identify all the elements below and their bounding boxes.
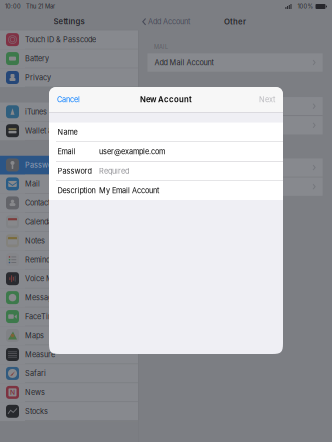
button[interactable]: Default Account bbox=[147, 116, 323, 134]
staticText: N bbox=[10, 388, 15, 396]
staticText: Add CalDAV Account bbox=[154, 182, 224, 191]
staticText: Description bbox=[57, 186, 95, 195]
staticText: Email bbox=[57, 147, 75, 156]
staticText: Add Mail Account bbox=[154, 58, 213, 67]
button[interactable]: Mail bbox=[0, 175, 138, 194]
button[interactable]: Stocks bbox=[0, 402, 138, 421]
staticText: Mail bbox=[25, 179, 40, 188]
staticText: MAIL bbox=[154, 44, 168, 50]
button[interactable]: Email bbox=[49, 142, 283, 161]
staticText: FaceTime bbox=[25, 312, 58, 321]
staticText: 100% bbox=[297, 3, 313, 10]
staticText: Measure bbox=[25, 350, 55, 359]
staticText: user@example.com bbox=[99, 147, 165, 156]
button[interactable]: Add Subscribed Calendar bbox=[147, 158, 323, 177]
staticText: Safari bbox=[25, 369, 46, 378]
button[interactable]: Add CalDAV Account bbox=[147, 177, 323, 196]
staticText: Add Account bbox=[148, 17, 190, 26]
staticText: Notes bbox=[25, 236, 45, 245]
button[interactable]: Password bbox=[49, 161, 283, 180]
button[interactable]: Passwords & Accounts bbox=[0, 156, 138, 175]
button[interactable]: FaceTime bbox=[0, 307, 138, 326]
staticText: 10:00 bbox=[5, 3, 21, 10]
staticText: Battery bbox=[25, 54, 49, 63]
staticText: Next bbox=[259, 95, 275, 104]
staticText: Wallet & Apple Pay bbox=[25, 126, 89, 135]
button[interactable]: Add Mail Account bbox=[147, 53, 323, 72]
button[interactable]: Measure bbox=[0, 345, 138, 364]
staticText: Privacy bbox=[25, 73, 51, 82]
staticText: Password bbox=[57, 167, 91, 175]
button[interactable]: Description bbox=[49, 181, 283, 200]
staticText: Add Contacts Account bbox=[154, 102, 227, 111]
staticText: Settings bbox=[53, 17, 84, 26]
staticText: My Email Account bbox=[99, 186, 159, 195]
button[interactable]: Privacy bbox=[0, 68, 138, 87]
staticText: New Account bbox=[140, 95, 192, 104]
staticText: Cancel bbox=[57, 95, 80, 104]
button[interactable]: Voice Memos bbox=[0, 269, 138, 288]
button[interactable]: Reminders bbox=[0, 250, 138, 269]
button[interactable]: N bbox=[0, 383, 138, 402]
staticText: Stocks bbox=[25, 407, 48, 416]
staticText: Messages bbox=[25, 293, 60, 302]
button[interactable]: Maps bbox=[0, 326, 138, 345]
button[interactable]: Battery bbox=[0, 49, 138, 68]
button[interactable]: Safari bbox=[0, 364, 138, 383]
button[interactable]: Notes bbox=[0, 231, 138, 250]
staticText: Name bbox=[57, 128, 77, 136]
button[interactable]: Contacts bbox=[0, 194, 138, 212]
button[interactable]: Calendar bbox=[0, 213, 138, 231]
button[interactable]: Add Contacts Account bbox=[147, 97, 323, 115]
button[interactable]: Next bbox=[259, 89, 283, 110]
staticText: News bbox=[25, 388, 45, 397]
staticText: Voice Memos bbox=[25, 274, 71, 283]
staticText: Passwords & Accounts bbox=[25, 160, 103, 169]
button[interactable]: Add Account bbox=[138, 13, 190, 30]
button[interactable]: iTunes & App Store bbox=[0, 102, 138, 121]
button[interactable]: Touch ID & Passcode bbox=[0, 30, 138, 49]
staticText: Default Account bbox=[154, 121, 207, 130]
button[interactable]: Name bbox=[49, 122, 283, 141]
staticText: Required bbox=[99, 167, 129, 175]
staticText: Thu 21 Mar bbox=[26, 3, 55, 10]
button[interactable]: Wallet & Apple Pay bbox=[0, 121, 138, 140]
button[interactable]: Messages bbox=[0, 288, 138, 307]
staticText: Maps bbox=[25, 331, 44, 340]
staticText: Calendar bbox=[25, 217, 55, 226]
staticText: CALENDARS bbox=[154, 149, 188, 155]
staticText: Other bbox=[224, 17, 246, 26]
staticText: Contacts bbox=[25, 198, 54, 207]
button[interactable]: Cancel bbox=[49, 89, 80, 110]
staticText: Reminders bbox=[25, 255, 61, 264]
staticText: Touch ID & Passcode bbox=[25, 35, 96, 44]
staticText: iTunes & App Store bbox=[25, 107, 89, 116]
